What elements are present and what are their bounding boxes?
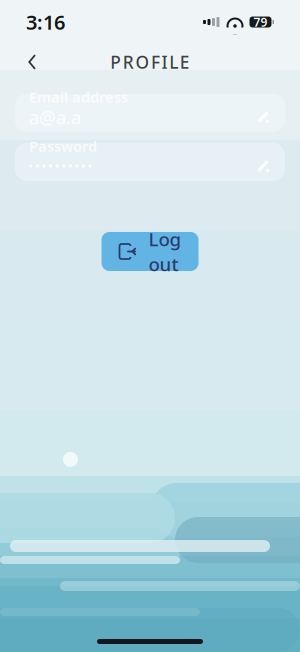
staticText: Email address bbox=[29, 87, 128, 107]
staticText: 3:16 bbox=[26, 9, 65, 35]
button[interactable]: Password bbox=[15, 143, 285, 181]
staticText: PROFILE bbox=[110, 50, 190, 73]
button[interactable]: Back bbox=[12, 44, 52, 80]
staticText: Log out bbox=[148, 227, 181, 276]
staticText: Password bbox=[29, 136, 97, 156]
button[interactable]: a@a.a bbox=[15, 94, 285, 132]
staticText: a@a.a bbox=[29, 105, 81, 129]
button[interactable]: Log out bbox=[101, 232, 198, 271]
staticText: 79 bbox=[253, 14, 267, 30]
